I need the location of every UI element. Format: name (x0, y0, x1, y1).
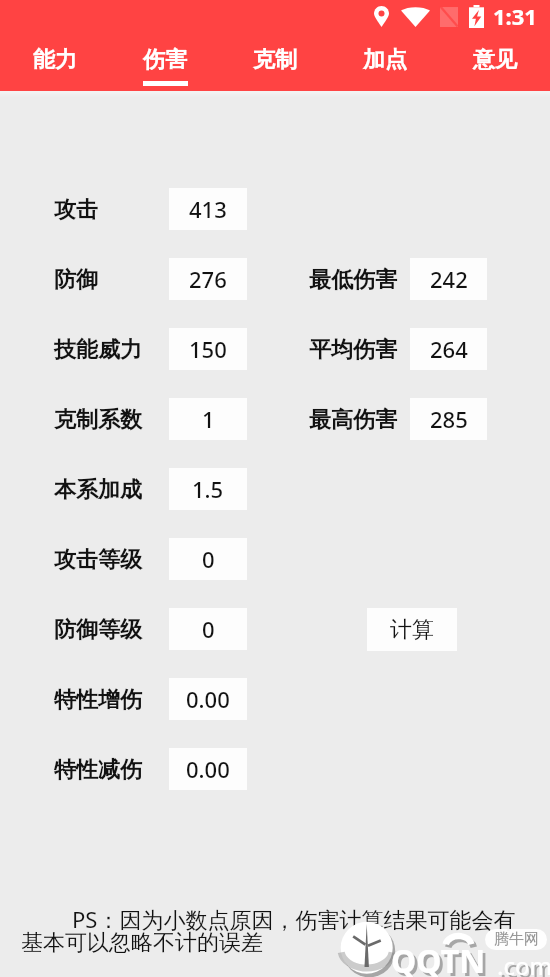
button[interactable]: 413 (169, 188, 247, 230)
staticText: 平均伤害 (309, 336, 397, 364)
staticText: 特性增伤 (54, 686, 142, 714)
button[interactable]: 能力 (0, 32, 110, 89)
button[interactable]: 加点 (330, 32, 440, 89)
staticText: 攻击等级 (54, 546, 142, 574)
button[interactable]: 意见 (440, 32, 550, 89)
other: No SIM card (440, 6, 458, 27)
staticText: 腾牛网 (494, 930, 539, 949)
staticText: 276 (189, 264, 227, 294)
staticText: 能力 (33, 46, 77, 74)
button[interactable]: 150 (169, 328, 247, 370)
button[interactable]: 计算 (367, 608, 457, 651)
staticText: 基本可以忽略不计的误差 (21, 929, 263, 957)
staticText: 攻击 (54, 196, 98, 224)
button[interactable]: 264 (410, 328, 487, 370)
staticText: 150 (189, 334, 227, 364)
button[interactable]: 伤害 (110, 32, 220, 89)
staticText: 克制 (253, 46, 297, 74)
staticText: 特性减伤 (54, 756, 142, 784)
staticText: .com (500, 952, 550, 977)
staticText: 0.00 (186, 684, 230, 714)
staticText: 264 (430, 334, 468, 364)
staticText: 242 (430, 264, 468, 294)
staticText: 413 (189, 194, 227, 224)
staticText: 最高伤害 (309, 406, 397, 434)
staticText: 1:31 (493, 1, 537, 31)
staticText: 1 (202, 404, 215, 434)
staticText: 计算 (390, 616, 434, 644)
staticText: 防御等级 (54, 616, 142, 644)
staticText: 伤害 (143, 46, 187, 74)
button[interactable]: 克制 (220, 32, 330, 89)
staticText: 0 (202, 544, 215, 574)
button[interactable]: 242 (410, 258, 487, 300)
staticText: 意见 (473, 46, 517, 74)
staticText: 285 (430, 404, 468, 434)
staticText: QQTN (391, 939, 486, 977)
other: Battery charging (469, 5, 484, 28)
button[interactable]: 1.5 (169, 468, 247, 510)
button[interactable]: 276 (169, 258, 247, 300)
staticText: 最低伤害 (309, 266, 397, 294)
button[interactable]: 0 (169, 608, 247, 650)
button[interactable]: 285 (410, 398, 487, 440)
staticText: QQTN (394, 942, 489, 977)
staticText: 加点 (363, 46, 407, 74)
button[interactable]: 0.00 (169, 748, 247, 790)
staticText: PS：因为小数点原因，伤害计算结果可能会有 (72, 904, 516, 934)
staticText: 0.00 (186, 754, 230, 784)
staticText: 1.5 (192, 474, 224, 504)
staticText: 克制系数 (54, 406, 142, 434)
staticText: 本系加成 (54, 476, 142, 504)
staticText: 防御 (54, 266, 98, 294)
button[interactable]: 0 (169, 538, 247, 580)
staticText: 0 (202, 614, 215, 644)
other: Wi-Fi (401, 6, 430, 27)
staticText: 技能威力 (54, 336, 142, 364)
button[interactable]: 1 (169, 398, 247, 440)
other: Location (374, 6, 389, 27)
button[interactable]: 0.00 (169, 678, 247, 720)
staticText: .com (497, 949, 550, 977)
